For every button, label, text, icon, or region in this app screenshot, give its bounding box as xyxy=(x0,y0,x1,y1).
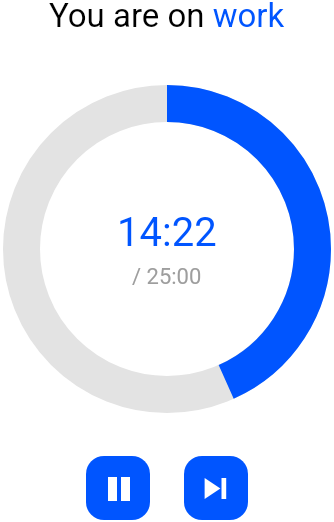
button[interactable]: Skip to next interval xyxy=(184,456,248,520)
button[interactable]: Pause xyxy=(86,456,150,520)
staticText: 14:22 xyxy=(117,209,217,256)
staticText: You are on work xyxy=(49,0,285,35)
staticText: / 25:00 xyxy=(132,264,202,290)
